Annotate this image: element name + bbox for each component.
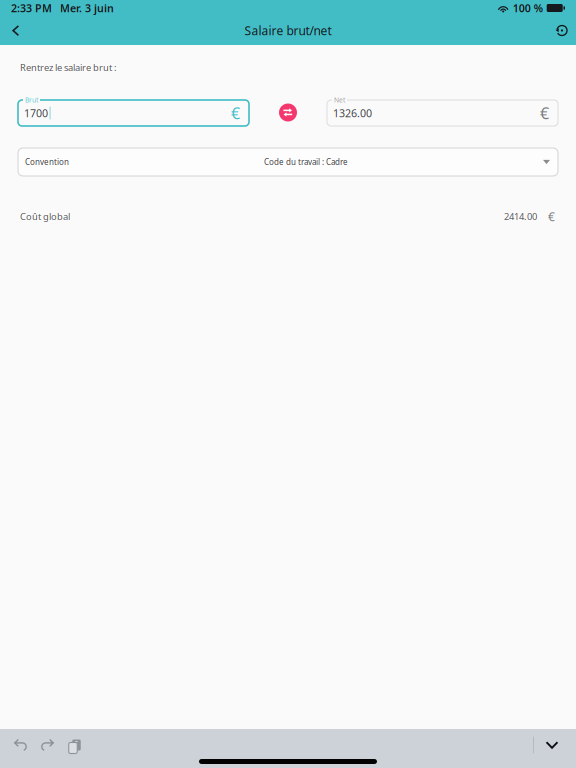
staticText: 1700 [24,106,48,120]
button[interactable]: Back [3,16,29,45]
button[interactable]: History [548,16,576,45]
staticText: Code du travail : Cadre [264,157,348,167]
button[interactable]: Redo [34,733,60,757]
staticText: Brut [25,95,38,104]
staticText: Rentrez le salaire brut : [20,61,117,74]
button[interactable]: Convention [18,148,558,176]
button[interactable]: Dismiss keyboard [534,733,570,757]
staticText: Mer. 3 juin [60,1,114,15]
staticText: Salaire brut/net [244,22,331,38]
staticText: 1326.00 [333,106,372,120]
staticText: Coût global [20,210,70,223]
staticText: € [540,102,549,124]
staticText: € [231,102,240,124]
staticText: Convention [25,157,69,167]
staticText: Net [334,95,345,104]
staticText: 2:33 PM [11,1,52,15]
staticText: 100 % [513,1,543,15]
button[interactable]: Swap gross and net [272,88,304,122]
staticText: 2414.00 [504,210,537,223]
button[interactable]: Undo [8,733,34,757]
staticText: € [548,208,555,224]
button[interactable]: Paste [60,733,86,757]
